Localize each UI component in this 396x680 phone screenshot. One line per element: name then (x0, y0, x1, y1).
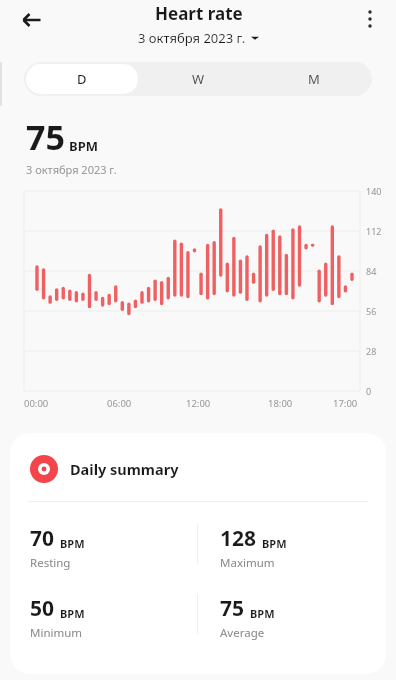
staticText: Maximum (220, 555, 275, 570)
staticText: 112 (366, 225, 382, 237)
staticText: 75 (26, 114, 65, 160)
staticText: BPM (250, 606, 275, 621)
button[interactable]: Daily summary (10, 433, 386, 674)
button[interactable]: Back (14, 2, 50, 38)
staticText: 70 (30, 524, 55, 553)
staticText: 0 (366, 385, 372, 397)
staticText: 06:00 (107, 397, 132, 410)
staticText: BPM (60, 606, 85, 621)
staticText: Daily summary (70, 459, 179, 479)
button[interactable]: W (142, 64, 254, 94)
staticText: 12:00 (186, 397, 211, 410)
staticText: 84 (366, 265, 377, 277)
staticText: 75 (220, 594, 245, 623)
staticText: 50 (30, 594, 55, 623)
staticText: BPM (69, 137, 98, 155)
staticText: 140 (366, 185, 382, 197)
staticText: Resting (30, 555, 71, 570)
staticText: W (192, 70, 205, 88)
staticText: Average (220, 625, 265, 640)
staticText: BPM (262, 536, 287, 551)
staticText: 17:00 (333, 397, 358, 410)
button[interactable]: 3 октября 2023 г. (134, 28, 263, 48)
button[interactable]: D (26, 64, 138, 94)
staticText: D (77, 70, 87, 88)
staticText: M (308, 70, 320, 88)
button[interactable]: M (258, 64, 370, 94)
staticText: 56 (366, 305, 377, 317)
staticText: 28 (366, 345, 377, 357)
staticText: 00:00 (24, 397, 49, 410)
staticText: 18:00 (268, 397, 293, 410)
staticText: 3 октября 2023 г. (26, 162, 117, 177)
staticText: BPM (60, 536, 85, 551)
staticText: Heart rate (155, 2, 243, 25)
button[interactable]: More options (352, 1, 388, 37)
staticText: Minimum (30, 625, 83, 640)
staticText: 3 октября 2023 г. (138, 29, 246, 47)
staticText: 128 (220, 524, 257, 553)
